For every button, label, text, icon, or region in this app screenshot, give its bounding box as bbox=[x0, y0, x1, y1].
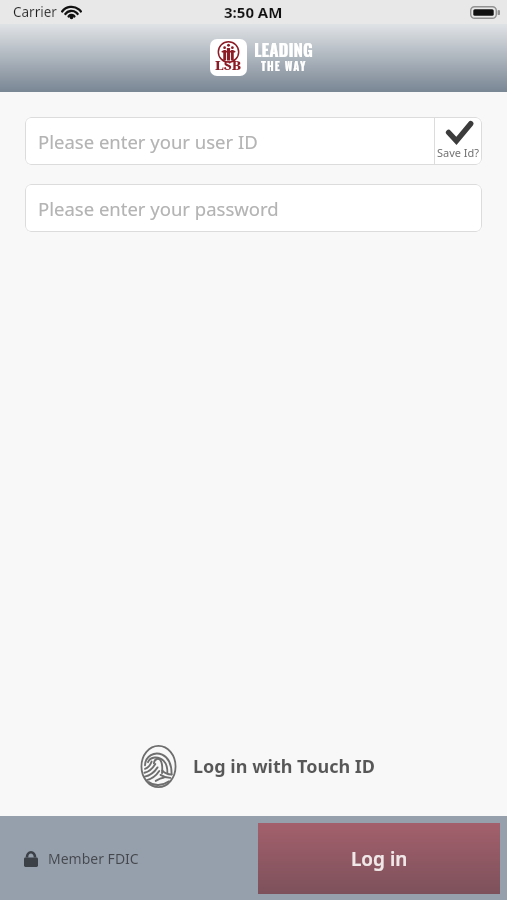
staticText: Member FDIC bbox=[48, 849, 139, 868]
button[interactable]: Please enter your user ID bbox=[25, 117, 434, 165]
staticText: Carrier bbox=[13, 3, 57, 21]
staticText: Please enter your user ID bbox=[38, 129, 258, 154]
staticText: Log in with Touch ID bbox=[193, 754, 376, 779]
staticText: Log in bbox=[351, 846, 408, 872]
staticText: LSB bbox=[215, 56, 242, 74]
staticText: 3:50 AM bbox=[224, 2, 283, 22]
button[interactable]: Please enter your password bbox=[25, 184, 482, 232]
staticText: Please enter your password bbox=[38, 196, 279, 221]
button[interactable]: Log in with Touch ID bbox=[4, 743, 507, 789]
button[interactable]: Save Id bbox=[435, 117, 482, 165]
staticText: LEADING bbox=[254, 37, 314, 62]
staticText: Save Id? bbox=[437, 145, 480, 160]
staticText: THE WAY bbox=[261, 58, 307, 74]
button[interactable]: Log in bbox=[258, 823, 500, 894]
